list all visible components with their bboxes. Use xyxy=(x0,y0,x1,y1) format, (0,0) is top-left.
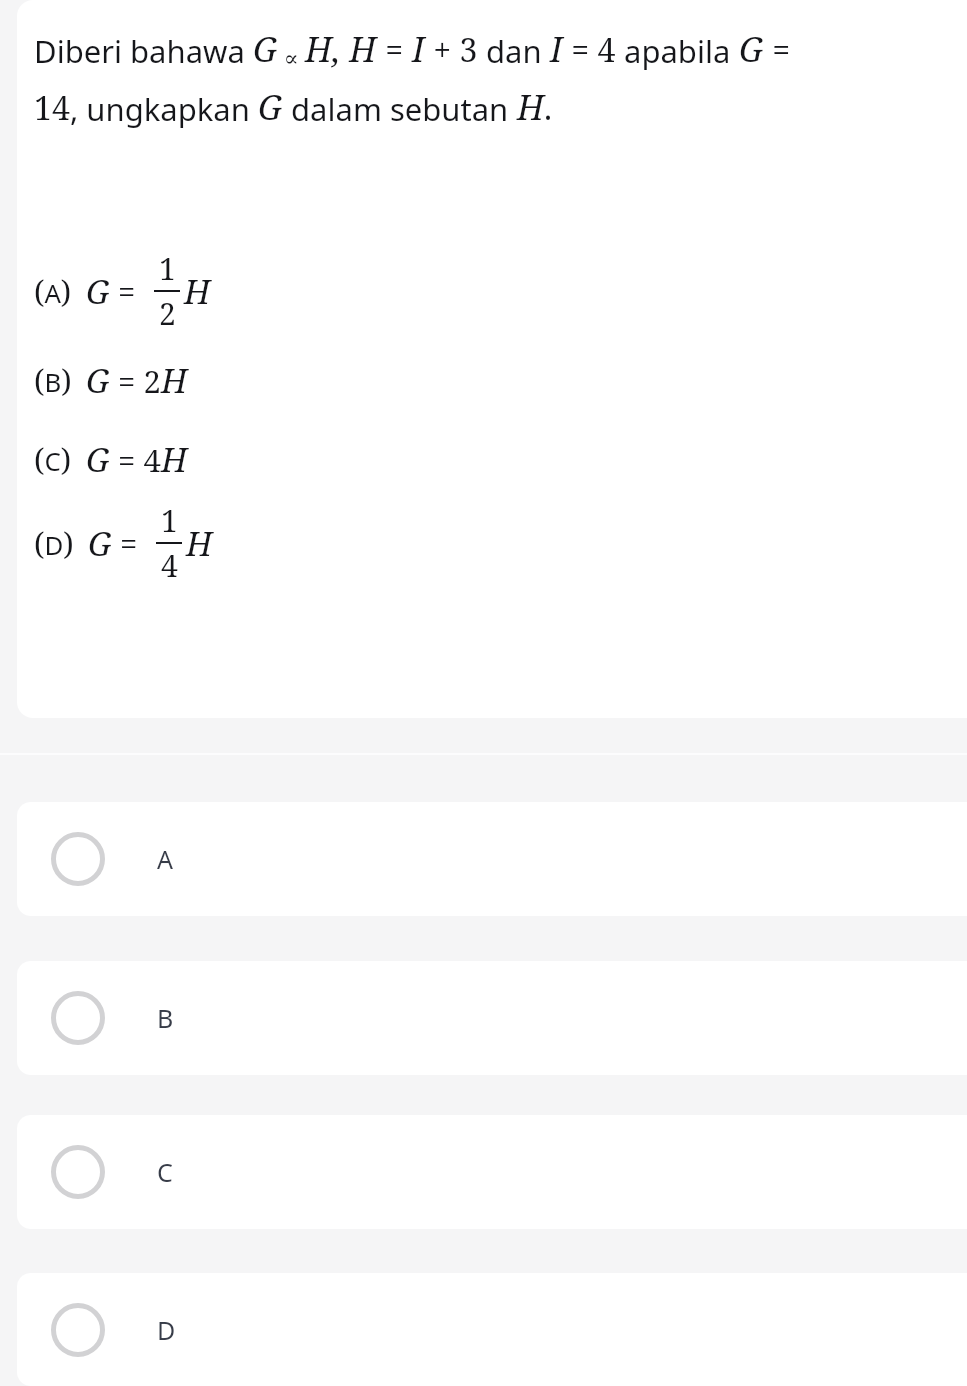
staticText: apabila xyxy=(624,30,739,72)
staticText: (C) xyxy=(34,439,72,480)
staticText: G xyxy=(739,26,764,72)
staticText: = xyxy=(112,522,146,564)
staticText: H xyxy=(184,269,211,314)
staticText: , ungkapkan xyxy=(70,88,258,130)
staticText: B xyxy=(157,1001,174,1035)
staticText: G xyxy=(86,358,110,403)
staticText: dan xyxy=(486,30,550,72)
staticText: A xyxy=(157,842,173,876)
staticText: G xyxy=(86,437,110,482)
button[interactable]: B xyxy=(17,961,967,1075)
staticText: H xyxy=(161,358,188,403)
staticText: D xyxy=(157,1313,176,1347)
staticText: + 3 xyxy=(425,28,486,72)
staticText: C xyxy=(157,1155,173,1189)
staticText: 4 xyxy=(161,545,178,586)
staticText: 2 xyxy=(159,293,176,334)
staticText: H xyxy=(517,84,544,130)
staticText: H xyxy=(161,437,188,482)
staticText: ∝ xyxy=(278,42,305,72)
button[interactable]: C xyxy=(17,1115,967,1229)
staticText: . xyxy=(544,86,553,130)
staticText: dalam sebutan xyxy=(283,88,517,130)
staticText: 14 xyxy=(34,86,70,130)
button[interactable]: A xyxy=(17,802,967,916)
staticText: I xyxy=(412,26,425,72)
staticText: = 2 xyxy=(110,360,161,402)
staticText: = xyxy=(110,270,144,312)
staticText: G xyxy=(258,84,283,130)
staticText: (D) xyxy=(34,523,74,564)
staticText: = xyxy=(764,28,791,72)
staticText: (B) xyxy=(34,360,72,401)
staticText: = 4 xyxy=(110,439,161,481)
staticText: H xyxy=(186,521,213,566)
staticText: G xyxy=(86,269,110,314)
staticText: I xyxy=(550,26,563,72)
staticText: G xyxy=(88,521,112,566)
staticText: = 4 xyxy=(563,28,624,72)
button[interactable]: D xyxy=(17,1273,967,1386)
staticText: = xyxy=(377,28,412,72)
staticText: (A) xyxy=(34,271,72,312)
staticText: H, H xyxy=(305,26,377,72)
staticText: Diberi bahawa xyxy=(34,30,253,72)
staticText: 1 xyxy=(159,248,176,289)
staticText: 1 xyxy=(161,500,178,541)
staticText: G xyxy=(253,26,278,72)
